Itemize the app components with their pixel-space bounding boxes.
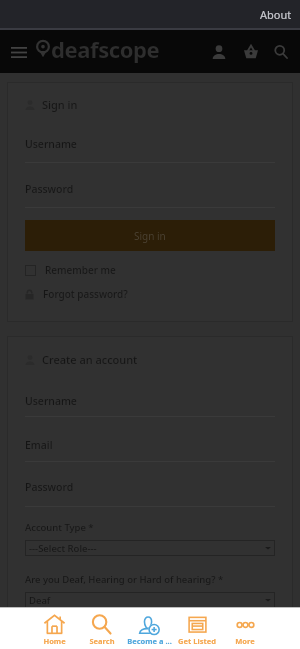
staticText: Password	[25, 182, 74, 196]
staticText: More	[235, 636, 255, 646]
staticText: About	[260, 7, 292, 22]
staticText: deafscope	[51, 34, 160, 64]
button[interactable]: Search	[266, 31, 296, 73]
button[interactable]: More	[221, 608, 269, 649]
button[interactable]: Sign in	[25, 220, 275, 251]
button[interactable]: Become a ...	[125, 608, 173, 649]
button[interactable]: Account	[202, 31, 236, 73]
staticText: Home	[43, 636, 66, 646]
button[interactable]: Forgot password?	[25, 287, 128, 301]
staticText: Get Listed	[178, 636, 216, 646]
button[interactable]: About	[252, 2, 300, 27]
staticText: Password	[25, 480, 74, 494]
staticText: Username	[25, 394, 77, 408]
staticText: Sign in	[134, 229, 166, 243]
staticText: Account Type *	[25, 521, 94, 534]
button[interactable]: Get Listed	[173, 608, 221, 649]
staticText: Email	[25, 438, 53, 452]
button[interactable]: deafscope	[36, 31, 160, 73]
button[interactable]: Menu	[4, 37, 34, 67]
staticText: Deaf	[29, 594, 51, 607]
staticText: Username	[25, 137, 77, 151]
staticText: Sign in	[42, 97, 78, 112]
button[interactable]: Remember me	[25, 263, 116, 277]
button[interactable]: Search	[78, 608, 125, 649]
staticText: Remember me	[45, 263, 116, 277]
staticText: Forgot password?	[43, 287, 128, 301]
button[interactable]: Home	[31, 608, 78, 649]
staticText: Are you Deaf, Hearing or Hard of hearing…	[25, 573, 224, 586]
button[interactable]: Deaf	[25, 592, 275, 608]
button[interactable]: Basket	[236, 31, 266, 73]
staticText: Become a ...	[127, 636, 172, 646]
button[interactable]: ---Select Role---	[25, 540, 275, 556]
staticText: Search	[89, 636, 115, 646]
staticText: Create an account	[42, 352, 138, 367]
staticText: ---Select Role---	[29, 542, 97, 555]
